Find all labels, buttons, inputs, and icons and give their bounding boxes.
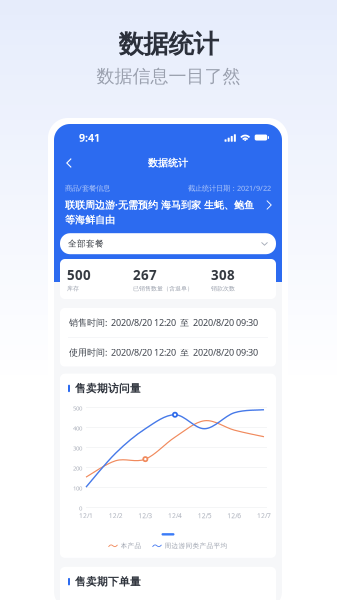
staticText: 12/3 xyxy=(138,511,152,520)
staticText: 12/2 xyxy=(109,511,123,520)
staticText: 销款次数 xyxy=(211,285,235,292)
button[interactable]: 全部套餐 xyxy=(60,233,276,254)
staticText: 100 xyxy=(73,484,82,492)
staticText: 售卖期下单量 xyxy=(75,575,141,588)
staticText: 300 xyxy=(73,444,82,452)
staticText: 截止统计日期：2021/9/22 xyxy=(188,183,271,193)
staticText: 数据信息一目了然 xyxy=(96,65,240,88)
staticText: 400 xyxy=(73,424,82,432)
staticText: 周边游同类产品平均 xyxy=(164,541,227,550)
staticText: 等海鲜自由 xyxy=(65,214,115,226)
staticText: 308 xyxy=(211,266,235,284)
staticText: 联联周边游·无需预约 海马到家 生蚝、鲍鱼 xyxy=(65,198,254,212)
staticText: 售卖期访问量 xyxy=(75,382,141,395)
staticText: 12/5 xyxy=(198,511,212,520)
staticText: 500 xyxy=(73,404,82,412)
staticText: 9:41 xyxy=(79,130,100,145)
staticText: 本产品 xyxy=(120,541,141,550)
button[interactable]: 联联周边游·无需预约 海马到家 生蚝、鲍鱼 xyxy=(54,193,282,226)
staticText: 12/1 xyxy=(79,511,93,520)
staticText: 500 xyxy=(67,266,91,284)
staticText: 使用时间: 2020/8/20 12:20 至 2020/8/20 09:30 xyxy=(69,346,258,358)
staticText: 库存 xyxy=(67,285,79,292)
button[interactable]: Back xyxy=(54,152,82,174)
staticText: 已销售数量（含退单） xyxy=(133,285,193,292)
staticText: 200 xyxy=(73,464,82,472)
staticText: 267 xyxy=(133,266,157,284)
staticText: 12/6 xyxy=(227,511,241,520)
staticText: 12/7 xyxy=(257,511,271,520)
staticText: 数据统计 xyxy=(118,28,218,60)
staticText: 0 xyxy=(79,504,82,512)
staticText: 数据统计 xyxy=(148,157,188,169)
staticText: 12/4 xyxy=(168,511,182,520)
staticText: 全部套餐 xyxy=(68,238,104,249)
staticText: 商品/套餐信息 xyxy=(65,183,110,193)
staticText: 销售时间: 2020/8/20 12:20 至 2020/8/20 09:30 xyxy=(69,316,258,329)
